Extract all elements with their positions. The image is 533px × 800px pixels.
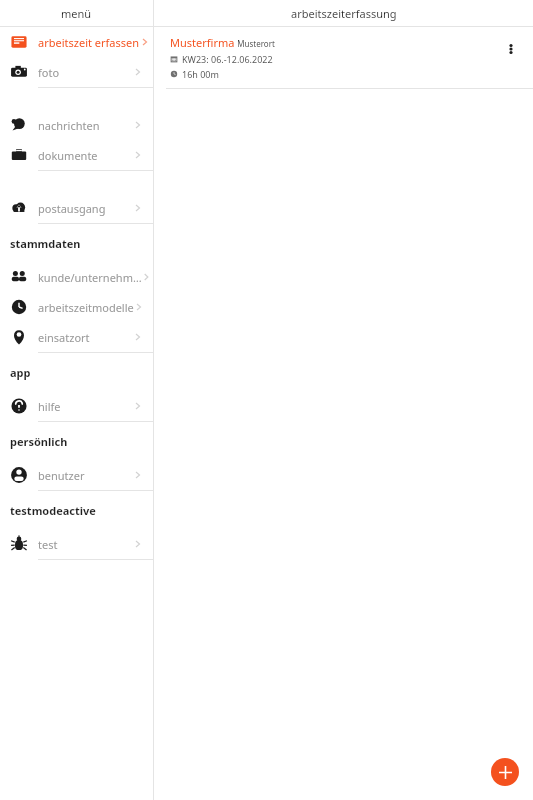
button[interactable]: arbeitszeitmodelle	[0, 292, 153, 322]
staticText: stammdaten	[10, 236, 81, 251]
staticText: KW23: 06.-12.06.2022	[182, 53, 273, 65]
staticText: kunde/unternehm…	[38, 270, 142, 285]
button[interactable]: nachrichten	[0, 110, 153, 140]
staticText: persönlich	[10, 434, 68, 449]
button[interactable]: Add	[491, 758, 519, 786]
button[interactable]: foto	[0, 57, 153, 87]
staticText: 16h 00m	[182, 68, 219, 80]
button[interactable]: kunde/unternehm…	[0, 262, 153, 292]
button[interactable]: More options	[489, 27, 533, 71]
button[interactable]: postausgang	[0, 193, 153, 223]
button[interactable]: hilfe	[0, 391, 153, 421]
button[interactable]: dokumente	[0, 140, 153, 170]
staticText: testmodeactive	[10, 503, 96, 518]
staticText: dokumente	[38, 148, 98, 163]
staticText: foto	[38, 65, 60, 80]
staticText: test	[38, 537, 58, 552]
staticText: benutzer	[38, 468, 85, 483]
staticText: postausgang	[38, 201, 106, 216]
staticText: arbeitszeitmodelle	[38, 300, 134, 315]
button[interactable]: arbeitszeit erfassen	[0, 27, 153, 57]
staticText: einsatzort	[38, 330, 90, 345]
staticText: arbeitszeit erfassen	[38, 35, 140, 50]
button[interactable]: benutzer	[0, 460, 153, 490]
button[interactable]: test	[0, 529, 153, 559]
staticText: nachrichten	[38, 118, 100, 133]
staticText: menü	[61, 6, 92, 21]
staticText: arbeitszeiterfassung	[291, 6, 397, 21]
button[interactable]: einsatzort	[0, 322, 153, 352]
button[interactable]: Musterfirma Musterort	[154, 27, 533, 88]
staticText: app	[10, 365, 31, 380]
staticText: hilfe	[38, 399, 61, 414]
staticText: Musterfirma Musterort	[170, 35, 275, 50]
